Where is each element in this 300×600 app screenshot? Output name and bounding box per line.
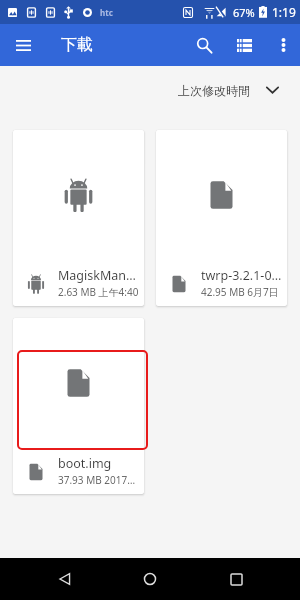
button[interactable]: More options	[266, 28, 300, 62]
staticText: 上次修改時間	[178, 83, 250, 98]
button[interactable]: Navigation menu	[8, 30, 39, 61]
button[interactable]: twrp-3.2.1-0…	[156, 130, 287, 306]
button[interactable]: Switch to list view	[227, 28, 261, 62]
staticText: 42.95 MB 6月7日	[201, 285, 279, 299]
staticText: boot.img	[58, 455, 112, 472]
staticText: 下載	[61, 35, 93, 55]
staticText: htc	[100, 7, 113, 18]
button[interactable]: Home	[129, 558, 171, 600]
button[interactable]: boot.img	[13, 318, 144, 494]
button[interactable]: Recent apps	[215, 558, 257, 600]
staticText: 1:19	[272, 4, 296, 20]
staticText: 2.63 MB 上午4:40	[58, 285, 139, 299]
staticText: twrp-3.2.1-0…	[201, 267, 282, 284]
staticText: 67%	[233, 5, 255, 20]
staticText: MagiskMan…	[58, 267, 136, 284]
button[interactable]: Back	[44, 558, 86, 600]
button[interactable]: 上次修改時間	[164, 66, 300, 114]
staticText: 37.93 MB 2017…	[58, 473, 136, 487]
button[interactable]: MagiskMan…	[13, 130, 144, 306]
button[interactable]: Search	[187, 28, 221, 62]
